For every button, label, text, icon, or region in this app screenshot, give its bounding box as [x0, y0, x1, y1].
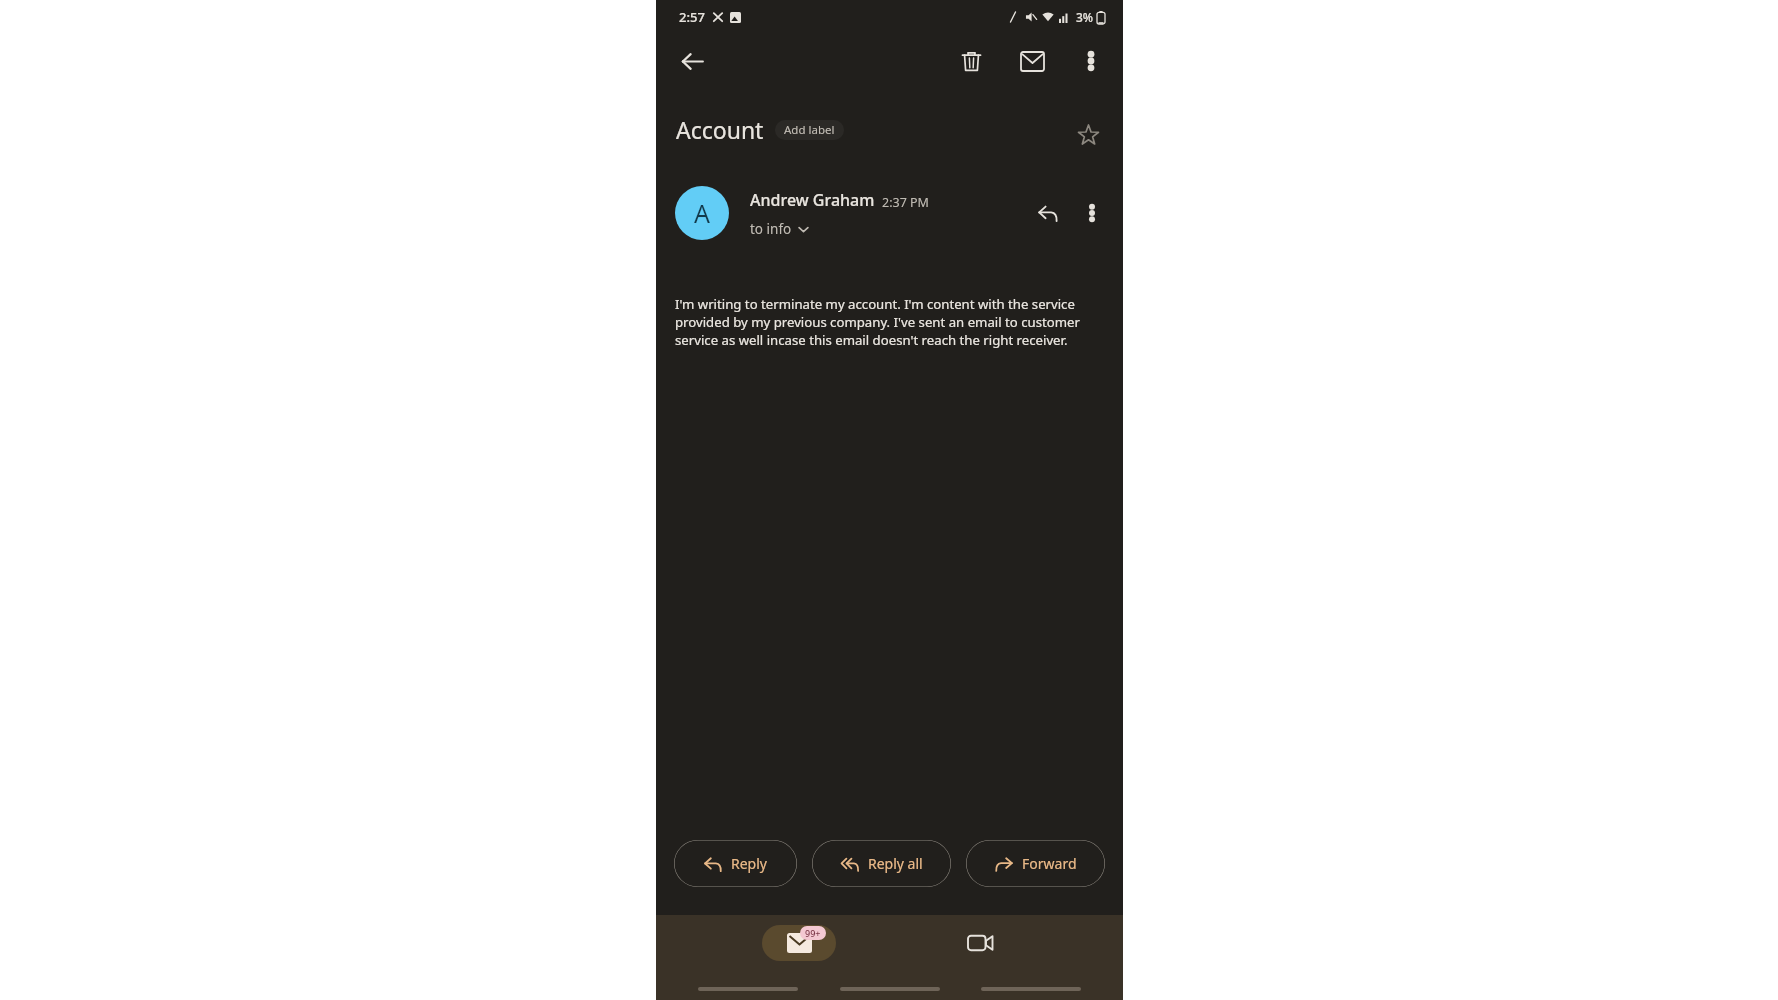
button[interactable]: A [675, 186, 729, 240]
staticText: 2:37 PM [882, 194, 929, 211]
button[interactable]: Meet [943, 925, 1017, 961]
button[interactable]: Reply all [812, 840, 951, 887]
button[interactable]: Forward [966, 840, 1105, 887]
staticText: 99+ [805, 927, 821, 939]
staticText: Add label [784, 122, 835, 138]
button[interactable]: Mail [762, 925, 836, 961]
button[interactable]: More options [1071, 41, 1111, 81]
staticText: Reply all [868, 854, 923, 873]
button[interactable]: More [1073, 194, 1111, 232]
button[interactable]: Back [670, 39, 714, 83]
staticText: I'm writing to terminate my account. I'm… [675, 295, 1104, 349]
button[interactable]: Reply [674, 840, 797, 887]
button[interactable]: Mark unread [1010, 39, 1054, 83]
button[interactable]: Delete [949, 39, 993, 83]
button[interactable]: Reply [1027, 192, 1069, 234]
staticText: A [694, 196, 710, 230]
staticText: Account [676, 114, 764, 145]
staticText: Andrew Graham [750, 189, 875, 211]
staticText: 3% [1076, 9, 1094, 25]
staticText: 2:57 [679, 8, 705, 26]
staticText: Forward [1022, 854, 1077, 873]
button[interactable]: Add label [775, 120, 844, 140]
staticText: to info [750, 220, 792, 238]
button[interactable]: Star [1067, 114, 1109, 156]
button[interactable]: to info [750, 220, 809, 238]
staticText: Reply [731, 854, 767, 873]
